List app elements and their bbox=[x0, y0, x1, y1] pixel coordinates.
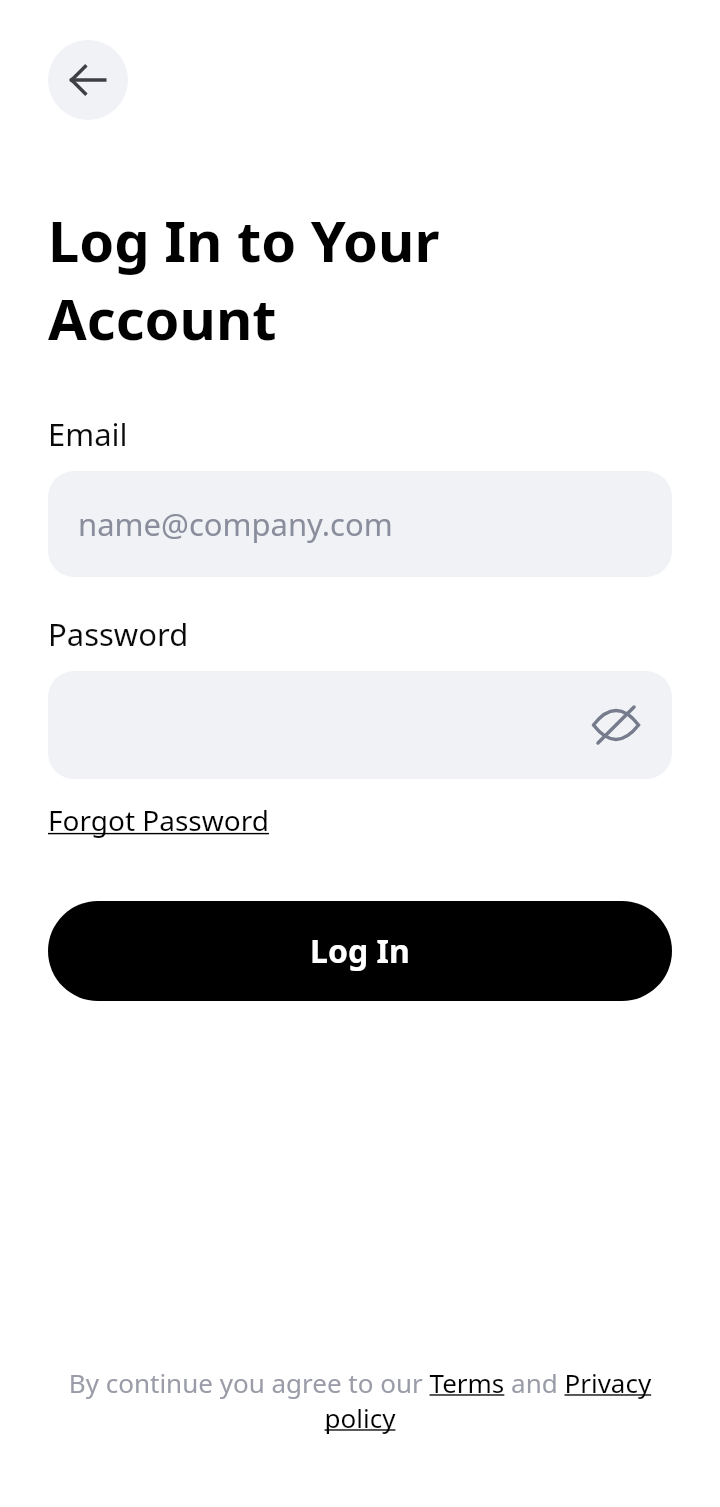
button[interactable]: Show password bbox=[586, 695, 646, 755]
staticText: Log In to Your Account bbox=[48, 202, 440, 357]
staticText: Log In bbox=[310, 929, 410, 973]
button[interactable]: name@company.com bbox=[48, 471, 672, 577]
staticText: Password bbox=[48, 613, 189, 655]
button[interactable]: Forgot Password bbox=[48, 801, 269, 839]
button[interactable]: Log In bbox=[48, 901, 672, 1001]
button[interactable]: By continue you agree to our Terms and P… bbox=[40, 1365, 680, 1435]
staticText: Forgot Password bbox=[48, 801, 269, 839]
button[interactable]: Back bbox=[48, 40, 128, 120]
staticText: Email bbox=[48, 413, 128, 455]
button[interactable]: Show password bbox=[48, 671, 672, 779]
staticText: By continue you agree to our Terms and P… bbox=[40, 1365, 680, 1435]
staticText: name@company.com bbox=[78, 503, 393, 545]
